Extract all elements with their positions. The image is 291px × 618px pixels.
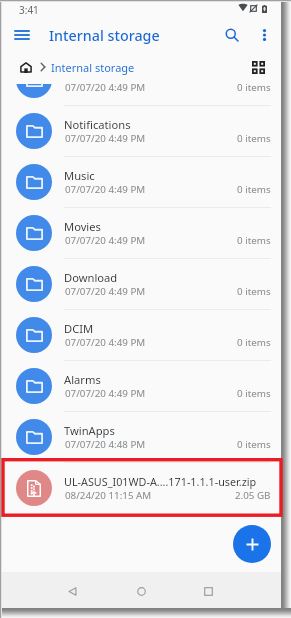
staticText: 0 items <box>237 234 271 247</box>
button[interactable]: Download <box>2 258 281 309</box>
staticText: Notifications <box>64 117 264 132</box>
staticText: Movies <box>64 219 264 234</box>
button[interactable]: Music <box>2 156 281 207</box>
staticText: 07/07/20 4:49 PM <box>65 84 146 94</box>
staticText: 0 items <box>237 84 271 94</box>
staticText: 07/07/20 4:49 PM <box>65 387 146 400</box>
button[interactable]: Movies <box>2 207 281 258</box>
button[interactable]: UL-ASUS_I01WD-A....171-1.1.1-user.zip <box>2 462 281 513</box>
staticText: 0 items <box>237 438 271 451</box>
staticText: 0 items <box>237 387 271 400</box>
staticText: 3:41 <box>19 3 39 17</box>
staticText: 07/07/20 4:49 PM <box>65 285 146 298</box>
staticText: 0 items <box>237 183 271 196</box>
button[interactable]: DCIM <box>2 309 281 360</box>
button[interactable]: Add <box>233 525 271 563</box>
button[interactable]: Recents <box>200 583 216 599</box>
staticText: Internal storage <box>49 26 160 45</box>
staticText: 07/07/20 4:49 PM <box>65 336 146 349</box>
staticText: 07/07/20 4:48 PM <box>65 438 146 451</box>
button[interactable]: Home <box>133 583 149 599</box>
button[interactable]: TwinApps <box>2 411 281 462</box>
staticText: 07/07/20 4:49 PM <box>65 234 146 247</box>
button[interactable]: Alarms <box>2 360 281 411</box>
staticText: UL-ASUS_I01WD-A....171-1.1.1-user.zip <box>64 474 264 489</box>
button[interactable]: More options <box>252 20 276 50</box>
staticText: 08/24/20 11:15 AM <box>65 489 152 502</box>
button[interactable]: Grid view <box>245 50 271 84</box>
staticText: 2.05 GB <box>235 489 271 502</box>
staticText: 0 items <box>237 132 271 145</box>
staticText: 0 items <box>237 285 271 298</box>
button[interactable]: Pictures <box>2 84 281 105</box>
staticText: 0 items <box>237 336 271 349</box>
staticText: DCIM <box>64 321 264 336</box>
button[interactable]: Back <box>64 583 80 599</box>
staticText: 07/07/20 4:49 PM <box>65 183 146 196</box>
button[interactable]: Internal storage <box>51 60 135 75</box>
button[interactable]: Menu <box>9 20 35 50</box>
button[interactable]: Home <box>14 50 38 84</box>
staticText: Download <box>64 270 264 285</box>
staticText: Music <box>64 168 264 183</box>
staticText: 07/07/20 4:49 PM <box>65 132 146 145</box>
button[interactable]: Search <box>219 20 245 50</box>
button[interactable]: Notifications <box>2 105 281 156</box>
staticText: TwinApps <box>64 423 264 438</box>
staticText: Alarms <box>64 372 264 387</box>
